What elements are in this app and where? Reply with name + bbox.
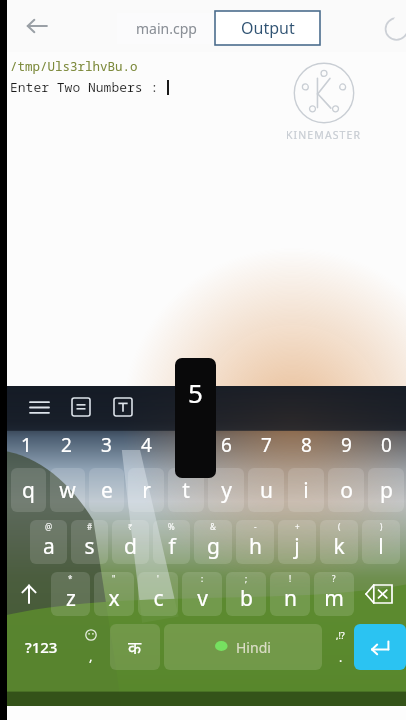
staticText: b [240, 584, 253, 613]
button[interactable]: % [153, 520, 190, 564]
staticText: 0 [381, 432, 392, 458]
button[interactable]: 0 [366, 426, 406, 464]
staticText: ?123 [25, 637, 58, 657]
button[interactable]: 4 [126, 426, 166, 464]
button[interactable]: y [208, 468, 244, 512]
button[interactable]: Text size [106, 390, 140, 424]
button[interactable]: q [11, 468, 46, 512]
staticText: % [168, 521, 175, 532]
staticText: Hindi [236, 638, 271, 657]
button[interactable]: e [89, 468, 124, 512]
button[interactable]: ₹ [112, 520, 149, 564]
button[interactable]: Output [215, 11, 320, 45]
staticText: # [87, 521, 93, 532]
button[interactable]: + [278, 520, 316, 564]
staticText: r [142, 476, 151, 505]
button[interactable]: Punctuation [326, 620, 354, 674]
button[interactable]: Enter [354, 624, 406, 670]
button[interactable]: Switch to Hindi layout [110, 624, 160, 670]
button[interactable]: Clipboard [64, 390, 98, 424]
button[interactable]: * [51, 572, 90, 616]
staticText: y [221, 476, 232, 505]
staticText: p [380, 476, 393, 505]
button[interactable]: Backspace [356, 568, 402, 620]
button[interactable]: w [50, 468, 85, 512]
staticText: u [260, 476, 273, 505]
staticText: s [84, 532, 95, 561]
button[interactable]: 9 [326, 426, 366, 464]
button[interactable]: # [71, 520, 108, 564]
button[interactable]: main.cpp [117, 13, 215, 44]
button[interactable]: " [94, 572, 134, 616]
staticText: v [197, 584, 208, 613]
staticText: ,!? [336, 629, 345, 641]
button[interactable]: ! [270, 572, 310, 616]
button[interactable]: r [128, 468, 164, 512]
button[interactable]: 7 [246, 426, 286, 464]
button[interactable]: o [328, 468, 364, 512]
button[interactable]: 2 [46, 426, 86, 464]
staticText: t [182, 476, 190, 505]
staticText: @ [45, 521, 53, 532]
staticText: h [249, 532, 262, 561]
staticText: o [340, 476, 353, 505]
staticText: 3 [101, 432, 112, 458]
staticText: main.cpp [136, 19, 197, 38]
button[interactable]: : [182, 572, 222, 616]
staticText: d [124, 532, 137, 561]
staticText: z [66, 584, 76, 613]
staticText: , [89, 647, 93, 665]
staticText: - [254, 521, 257, 532]
staticText: x [108, 584, 120, 613]
button[interactable]: Back [16, 5, 58, 47]
button[interactable]: 8 [286, 426, 326, 464]
button[interactable]: 6 [206, 426, 246, 464]
staticText: . [339, 649, 343, 665]
staticText: + [295, 521, 300, 532]
button[interactable]: ( [320, 520, 358, 564]
staticText: 7 [261, 432, 272, 458]
button[interactable]: ' [138, 572, 178, 616]
button[interactable]: ) [362, 520, 400, 564]
staticText: & [210, 521, 216, 532]
button[interactable]: Toggle dark mode [384, 16, 406, 42]
button[interactable]: ; [226, 572, 266, 616]
staticText: e [101, 476, 113, 505]
button[interactable]: 3 [86, 426, 126, 464]
staticText: ) [380, 521, 383, 532]
button[interactable]: @ [30, 520, 67, 564]
staticText: ( [338, 521, 341, 532]
staticText: m [324, 584, 344, 613]
button[interactable]: 1 [7, 426, 46, 464]
staticText: l [378, 532, 384, 561]
button[interactable]: t [168, 468, 204, 512]
button[interactable]: Hindi [164, 624, 322, 670]
staticText: 2 [61, 432, 72, 458]
button[interactable]: ? [314, 572, 354, 616]
button[interactable]: Emoji [72, 620, 110, 674]
staticText: j [294, 532, 300, 561]
button[interactable]: & [194, 520, 232, 564]
staticText: 8 [301, 432, 312, 458]
button[interactable]: - [236, 520, 274, 564]
staticText: KINEMASTER [286, 128, 362, 142]
staticText: क [128, 636, 142, 659]
staticText: w [59, 476, 76, 505]
staticText: ₹ [128, 521, 133, 532]
button[interactable]: Shift [9, 568, 49, 620]
button[interactable]: p [368, 468, 404, 512]
staticText: * [68, 573, 73, 584]
button[interactable]: ?123 [10, 620, 72, 674]
staticText: f [168, 532, 176, 561]
staticText: 6 [221, 432, 232, 458]
staticText: k [333, 532, 345, 561]
button[interactable]: i [288, 468, 324, 512]
button[interactable]: Menu [22, 390, 56, 424]
staticText: n [284, 584, 297, 613]
staticText: Output [241, 17, 295, 39]
button[interactable]: 5 [166, 426, 206, 464]
staticText: : [201, 573, 204, 584]
button[interactable]: u [248, 468, 284, 512]
staticText: 1 [21, 432, 32, 458]
